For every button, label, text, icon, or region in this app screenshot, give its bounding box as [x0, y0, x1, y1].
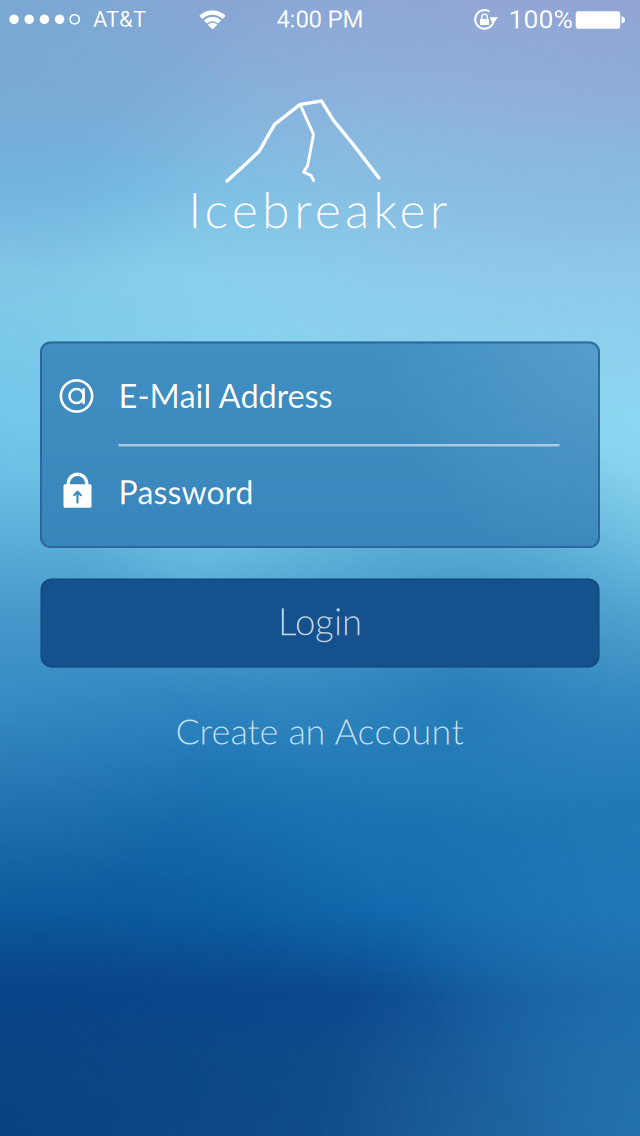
button[interactable] [42, 343, 598, 443]
staticText: Login [278, 599, 362, 643]
staticText: 4:00 PM [276, 5, 363, 33]
button[interactable] [42, 447, 598, 547]
staticText: 100% [508, 4, 572, 35]
staticText: Create an Account [175, 709, 463, 752]
button[interactable]: Create an Account [175, 709, 463, 752]
staticText: E-Mail Address [118, 376, 332, 415]
staticText: Icebreaker [188, 179, 448, 239]
button[interactable]: Login [40, 578, 599, 667]
staticText: Password [118, 473, 253, 511]
staticText: AT&T [93, 6, 146, 32]
